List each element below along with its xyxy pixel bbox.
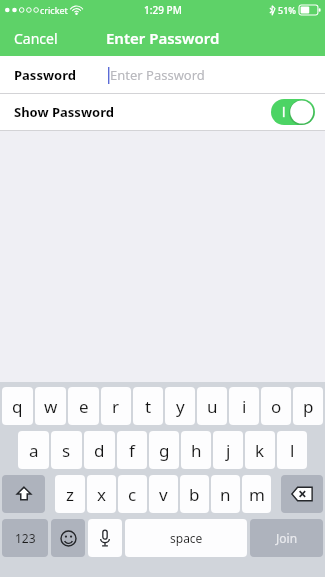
staticText: e: [79, 395, 89, 418]
staticText: cricket: [40, 4, 68, 16]
staticText: k: [255, 439, 265, 462]
staticText: s: [62, 439, 71, 462]
staticText: Cancel: [14, 29, 58, 48]
staticText: i: [242, 395, 247, 418]
staticText: o: [271, 395, 282, 418]
staticText: w: [44, 395, 58, 418]
staticText: x: [97, 483, 106, 506]
button[interactable]: x: [87, 475, 116, 513]
staticText: b: [189, 483, 200, 506]
button[interactable]: z: [55, 475, 85, 513]
staticText: u: [207, 395, 218, 418]
staticText: p: [303, 395, 314, 418]
button[interactable]: y: [165, 387, 195, 425]
button[interactable]: o: [261, 387, 291, 425]
staticText: Join: [276, 530, 298, 546]
button[interactable]: r: [101, 387, 131, 425]
button[interactable]: e: [68, 387, 99, 425]
staticText: d: [94, 439, 105, 462]
staticText: m: [249, 483, 265, 506]
button[interactable]: Join: [250, 519, 323, 557]
button[interactable]: Show Password toggle: [271, 99, 315, 125]
staticText: a: [29, 439, 39, 462]
button[interactable]: Backspace: [281, 475, 323, 513]
staticText: j: [226, 439, 231, 462]
button[interactable]: n: [211, 475, 240, 513]
button[interactable]: q: [2, 387, 33, 425]
button[interactable]: Cancel: [0, 23, 72, 54]
button[interactable]: h: [181, 431, 211, 469]
button[interactable]: c: [118, 475, 147, 513]
button[interactable]: a: [18, 431, 49, 469]
button[interactable]: b: [180, 475, 209, 513]
button[interactable]: d: [84, 431, 115, 469]
button[interactable]: s: [51, 431, 82, 469]
staticText: f: [129, 439, 135, 462]
staticText: q: [12, 395, 23, 418]
button[interactable]: Shift: [2, 475, 45, 513]
button[interactable]: j: [213, 431, 243, 469]
staticText: v: [159, 483, 168, 506]
button[interactable]: Emoji: [51, 519, 85, 557]
button[interactable]: t: [133, 387, 163, 425]
button[interactable]: 123: [2, 519, 48, 557]
staticText: z: [66, 483, 74, 506]
button[interactable]: Password: [0, 56, 325, 93]
staticText: g: [159, 439, 170, 462]
button[interactable]: Dictation: [88, 519, 122, 557]
button[interactable]: i: [229, 387, 259, 425]
button[interactable]: k: [245, 431, 275, 469]
staticText: Enter Password: [110, 66, 205, 84]
button[interactable]: f: [117, 431, 147, 469]
staticText: y: [176, 395, 185, 418]
button[interactable]: l: [277, 431, 307, 469]
button[interactable]: Show Password: [0, 94, 325, 130]
button[interactable]: space: [125, 519, 247, 557]
staticText: space: [170, 530, 203, 546]
staticText: 123: [15, 530, 36, 546]
staticText: 1:29 PM: [144, 3, 182, 17]
button[interactable]: m: [242, 475, 271, 513]
staticText: l: [290, 439, 295, 462]
staticText: Enter Password: [106, 28, 220, 48]
staticText: 51%: [278, 4, 296, 16]
staticText: c: [128, 483, 137, 506]
button[interactable]: u: [197, 387, 227, 425]
staticText: t: [145, 395, 152, 418]
button[interactable]: p: [293, 387, 323, 425]
staticText: r: [112, 395, 120, 418]
staticText: Show Password: [14, 103, 114, 121]
staticText: Password: [14, 66, 76, 84]
staticText: n: [220, 483, 231, 506]
button[interactable]: v: [149, 475, 178, 513]
staticText: h: [191, 439, 202, 462]
button[interactable]: g: [149, 431, 179, 469]
button[interactable]: w: [35, 387, 66, 425]
